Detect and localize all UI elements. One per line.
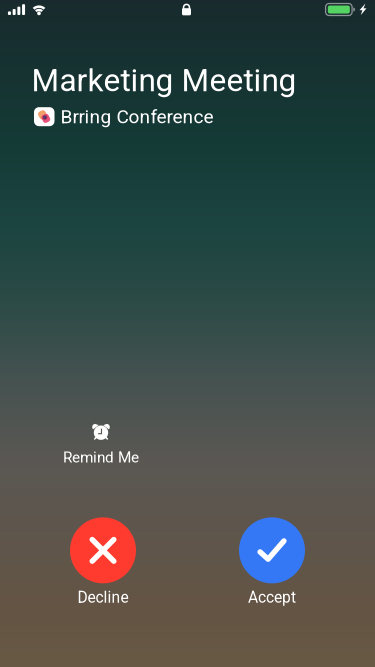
staticText: Accept	[248, 588, 296, 607]
staticText: Remind Me	[63, 448, 139, 466]
button[interactable]: Decline	[55, 517, 151, 607]
staticText: Decline	[77, 588, 128, 607]
staticText: Brring Conference	[60, 105, 213, 128]
staticText: Marketing Meeting	[31, 62, 296, 99]
button[interactable]: Remind Me	[45, 421, 157, 469]
button[interactable]: Accept	[224, 517, 320, 607]
